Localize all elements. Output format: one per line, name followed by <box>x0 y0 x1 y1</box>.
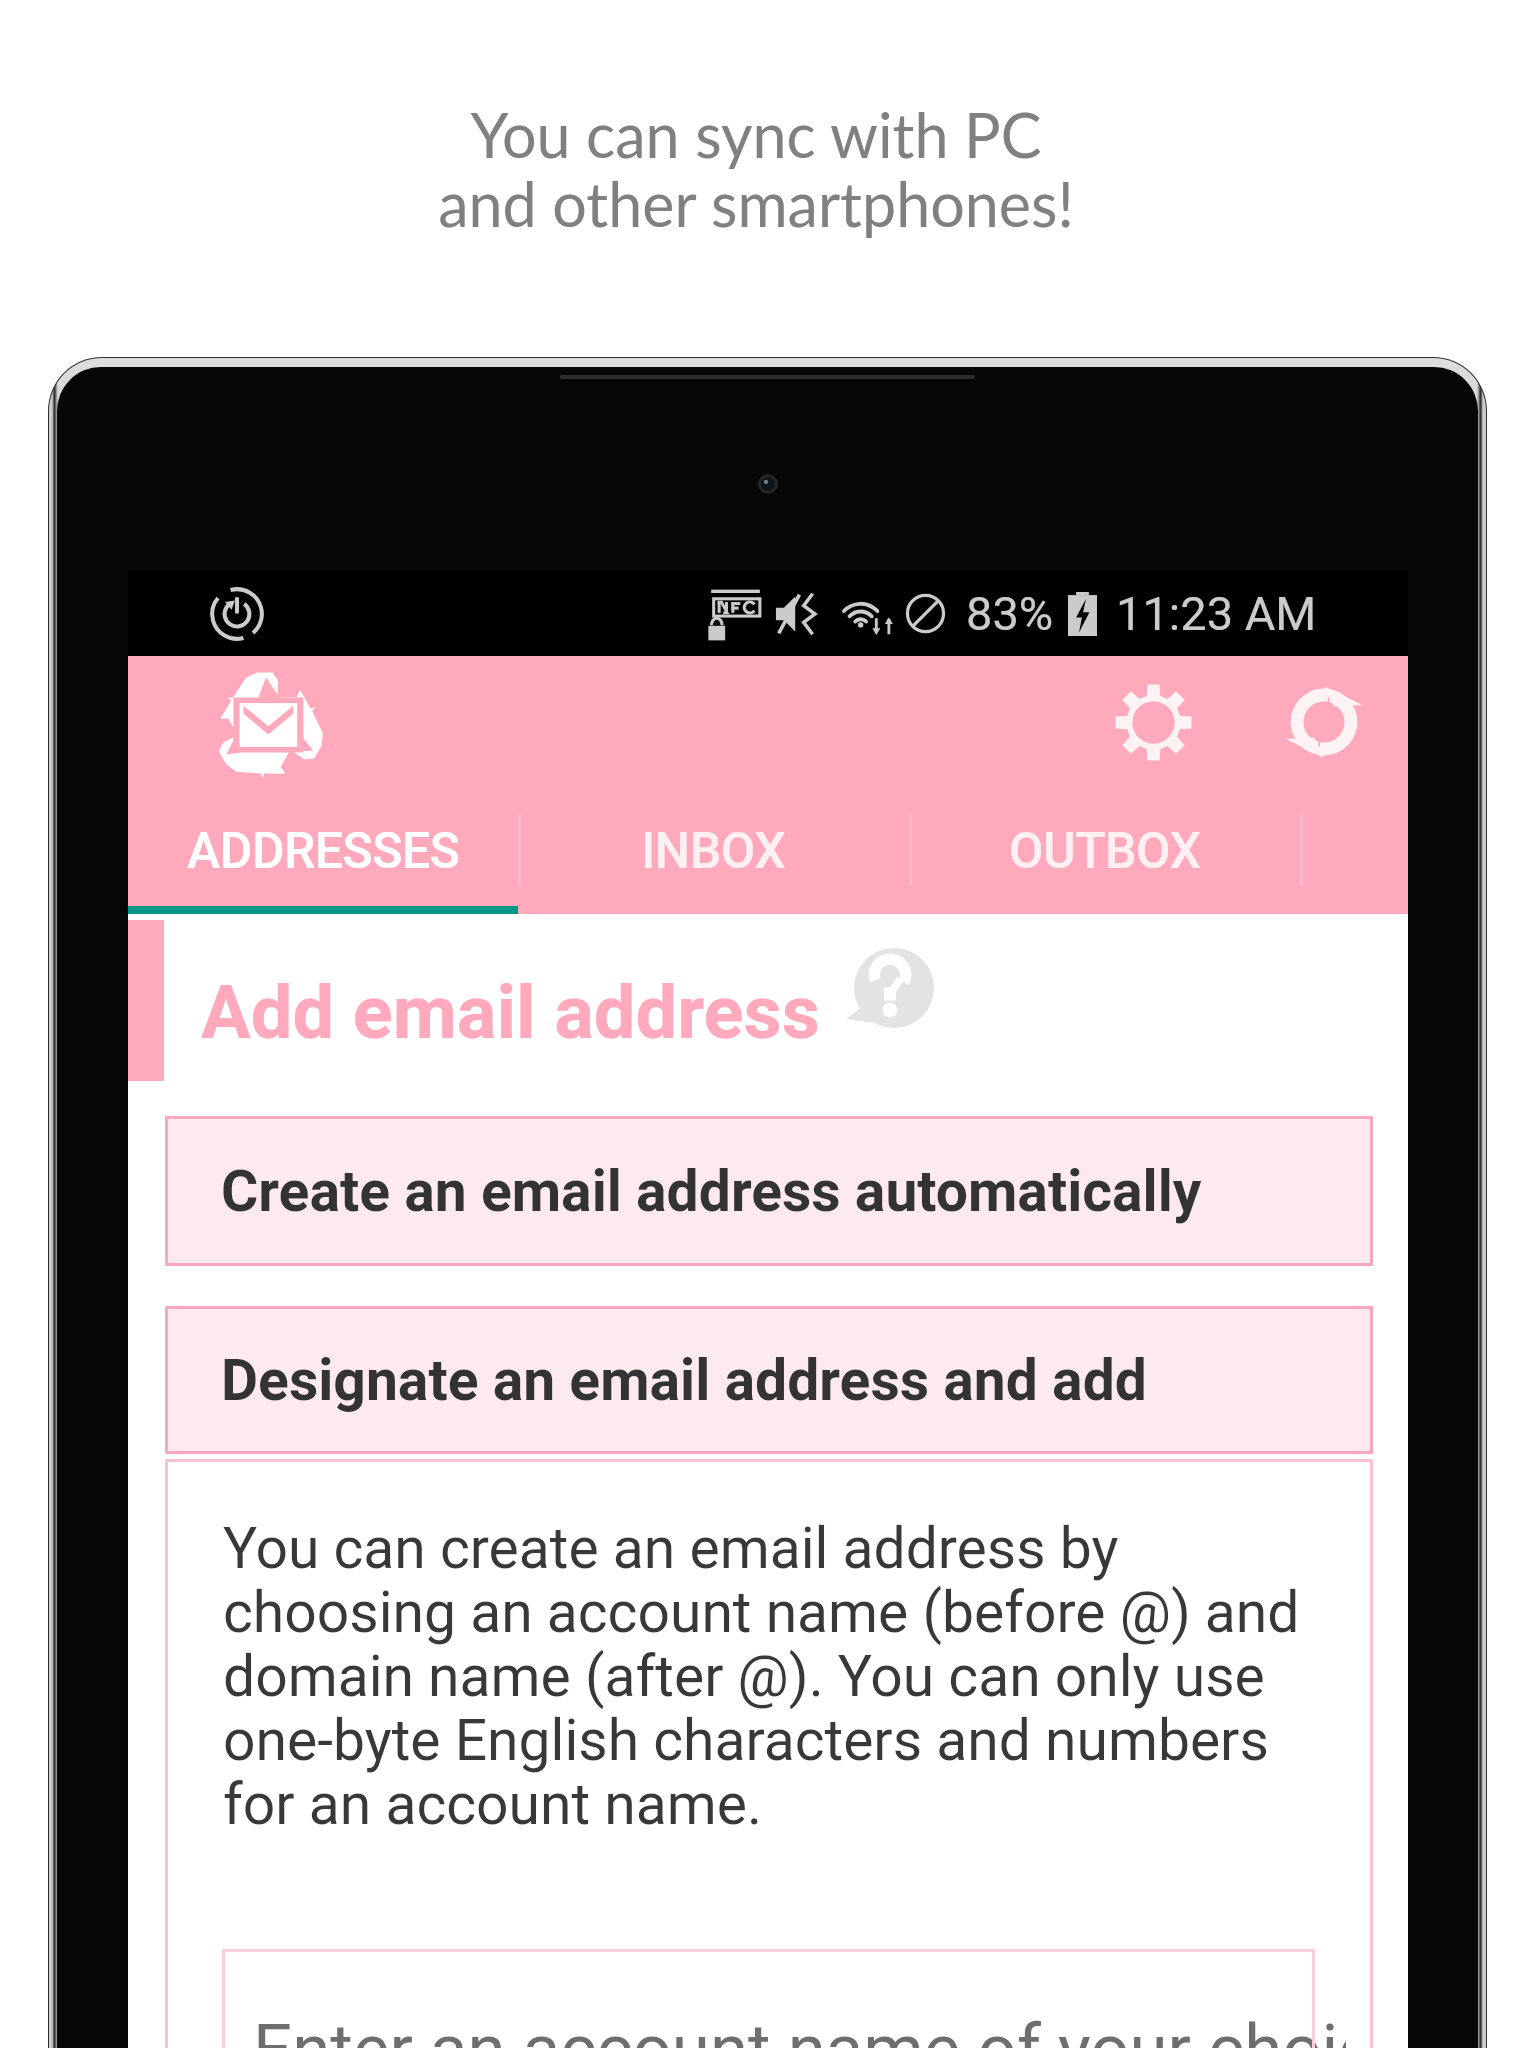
button[interactable]: Settings <box>1097 666 1209 778</box>
staticText: Create an email address automatically <box>221 1158 1202 1225</box>
staticText: You can sync with PC and other smartphon… <box>438 98 1074 240</box>
button[interactable]: INBOX <box>518 802 909 914</box>
button[interactable]: OUTBOX <box>909 802 1300 914</box>
staticText: 11:23 AM <box>1116 586 1317 641</box>
button[interactable]: Designate an email address and add <box>165 1306 1373 1454</box>
staticText: INBOX <box>641 822 786 881</box>
button[interactable]: Enter an account name of your choice <box>222 1949 1315 2048</box>
staticText: Enter an account name of your choice <box>253 2009 1346 2048</box>
button[interactable]: Create an email address automatically <box>165 1116 1373 1266</box>
staticText: 83% <box>966 586 1054 641</box>
staticText: You can create an email address by choos… <box>223 1515 1308 1838</box>
staticText: Add email address <box>201 969 820 1056</box>
staticText: Designate an email address and add <box>221 1347 1147 1414</box>
staticText: OUTBOX <box>1009 822 1201 881</box>
button[interactable]: Sync <box>1268 666 1380 778</box>
button[interactable]: ADDRESSES <box>128 802 518 914</box>
staticText: ADDRESSES <box>187 822 460 881</box>
